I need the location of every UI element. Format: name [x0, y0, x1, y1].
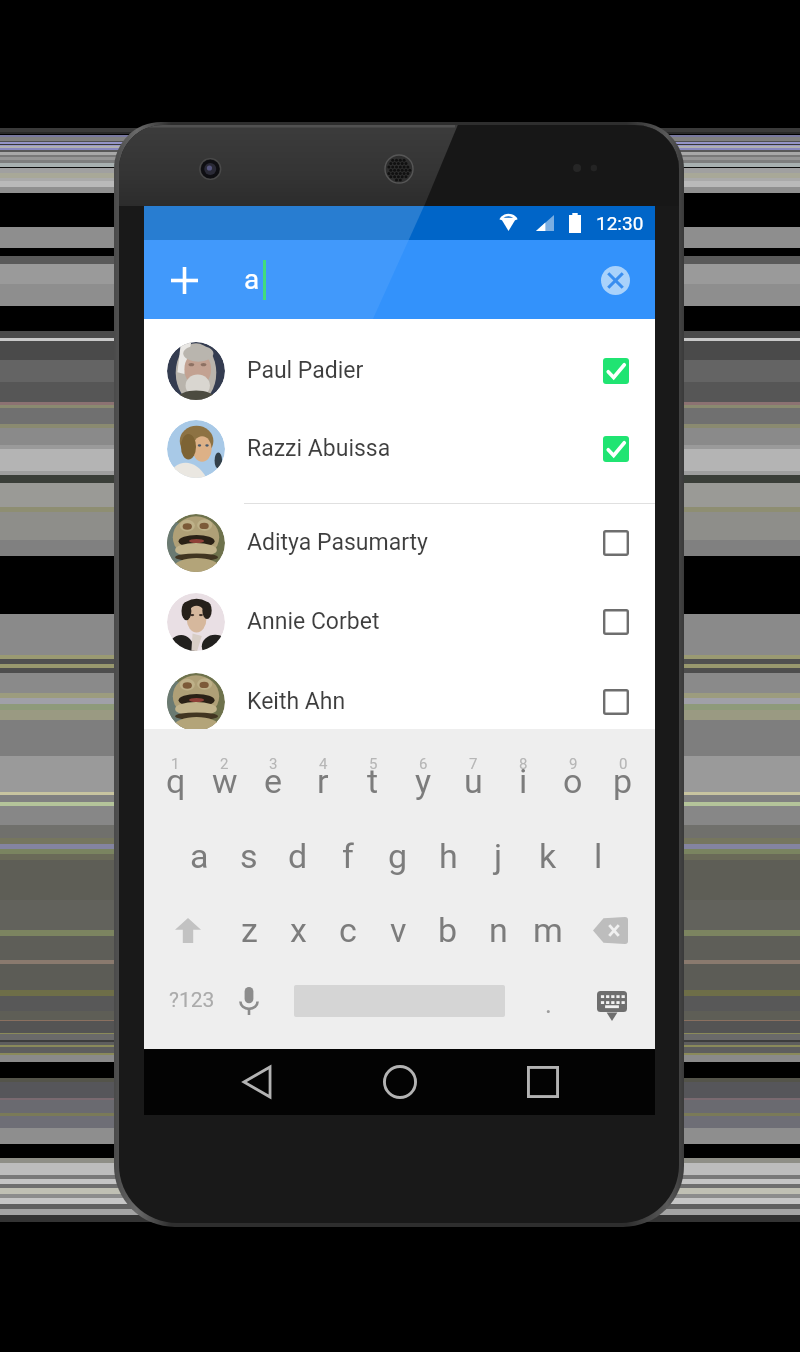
button[interactable]: x: [274, 890, 323, 970]
staticText: v: [390, 910, 407, 950]
button[interactable]: 4: [298, 730, 348, 822]
button[interactable]: k: [523, 822, 573, 890]
button[interactable]: d: [273, 822, 323, 890]
button[interactable]: Backspace: [573, 890, 648, 970]
staticText: y: [415, 761, 432, 801]
button[interactable]: g: [373, 822, 423, 890]
button[interactable]: Hide keyboard: [567, 961, 648, 1040]
staticText: 6: [419, 755, 428, 773]
staticText: g: [388, 836, 408, 876]
button[interactable]: ?123: [151, 961, 232, 1040]
button[interactable]: a: [175, 822, 224, 890]
staticText: Razzi Abuissa: [247, 435, 391, 462]
staticText: 0: [619, 755, 628, 773]
staticText: 12:30: [596, 212, 644, 234]
staticText: Paul Padier: [247, 357, 364, 384]
staticText: e: [264, 761, 283, 801]
staticText: s: [240, 836, 258, 876]
button[interactable]: v: [373, 890, 423, 970]
button[interactable]: 7: [448, 730, 498, 822]
button[interactable]: j: [473, 822, 523, 890]
button[interactable]: Select contact: [594, 349, 638, 393]
staticText: f: [342, 836, 354, 876]
staticText: i: [519, 761, 528, 801]
staticText: c: [339, 910, 357, 950]
staticText: 4: [319, 755, 328, 773]
button[interactable]: Annie Corbet: [144, 582, 655, 661]
button[interactable]: Select contact: [594, 427, 638, 471]
button[interactable]: b: [423, 890, 473, 970]
button[interactable]: 9: [548, 730, 598, 822]
button[interactable]: Razzi Abuissa: [144, 409, 655, 488]
button[interactable]: Aditya Pasumarty: [144, 503, 655, 582]
button[interactable]: 2: [200, 730, 249, 822]
staticText: Keith Ahn: [247, 688, 346, 715]
button[interactable]: Select contact: [594, 680, 638, 724]
staticText: .: [545, 989, 552, 1019]
button[interactable]: 8: [498, 730, 548, 822]
button[interactable]: s: [224, 822, 273, 890]
staticText: q: [166, 761, 186, 801]
button[interactable]: z: [225, 890, 274, 970]
staticText: r: [317, 761, 329, 801]
staticText: 8: [519, 755, 528, 773]
staticText: 2: [220, 755, 229, 773]
staticText: l: [594, 836, 603, 876]
button[interactable]: n: [473, 890, 523, 970]
staticText: j: [494, 836, 503, 876]
staticText: k: [539, 836, 557, 876]
button[interactable]: 0: [598, 730, 648, 822]
button[interactable]: Recent apps: [513, 1052, 573, 1112]
button[interactable]: Shift: [151, 890, 225, 970]
button[interactable]: m: [523, 890, 573, 970]
button[interactable]: f: [323, 822, 373, 890]
staticText: Annie Corbet: [247, 608, 380, 635]
staticText: 3: [269, 755, 278, 773]
staticText: t: [367, 761, 379, 801]
staticText: o: [563, 761, 583, 801]
staticText: z: [241, 910, 258, 950]
staticText: 5: [369, 755, 378, 773]
button[interactable]: Add contact: [159, 255, 209, 305]
button[interactable]: Clear search: [594, 259, 636, 301]
staticText: d: [288, 836, 308, 876]
button[interactable]: Select contact: [594, 521, 638, 565]
staticText: h: [439, 836, 458, 876]
staticText: 7: [469, 755, 478, 773]
staticText: a: [190, 836, 209, 876]
staticText: p: [613, 761, 633, 801]
staticText: Aditya Pasumarty: [247, 529, 428, 556]
staticText: 9: [569, 755, 578, 773]
button[interactable]: Keith Ahn: [144, 662, 655, 729]
staticText: a: [244, 263, 260, 296]
button[interactable]: Space: [286, 961, 513, 1040]
staticText: x: [290, 910, 307, 950]
staticText: w: [212, 761, 238, 801]
button[interactable]: 5: [348, 730, 398, 822]
button[interactable]: Home: [370, 1052, 430, 1112]
staticText: b: [438, 910, 458, 950]
staticText: ?123: [169, 988, 215, 1013]
button[interactable]: Select contact: [594, 600, 638, 644]
button[interactable]: h: [423, 822, 473, 890]
button[interactable]: 6: [398, 730, 448, 822]
staticText: u: [464, 761, 483, 801]
staticText: m: [533, 910, 563, 950]
button[interactable]: Paul Padier: [144, 331, 655, 410]
button[interactable]: 1: [151, 730, 200, 822]
button[interactable]: l: [573, 822, 623, 890]
staticText: 1: [171, 755, 180, 773]
button[interactable]: Voice input: [232, 961, 286, 1040]
staticText: n: [489, 910, 508, 950]
button[interactable]: c: [323, 890, 373, 970]
button[interactable]: 3: [249, 730, 298, 822]
button[interactable]: Back: [227, 1052, 287, 1112]
